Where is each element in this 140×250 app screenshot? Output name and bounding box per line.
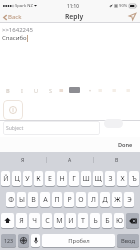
button[interactable]: mic bbox=[31, 234, 40, 247]
button[interactable]: П bbox=[52, 192, 62, 207]
staticText: >>1642245 bbox=[2, 26, 33, 34]
staticText: Г bbox=[72, 174, 76, 184]
button[interactable]: globe bbox=[18, 234, 29, 247]
staticText: 90% bbox=[119, 3, 128, 9]
button[interactable]: Toggle bbox=[104, 119, 123, 128]
button[interactable]: Я bbox=[16, 213, 27, 228]
button[interactable]: Subject bbox=[3, 121, 100, 135]
staticText: Р bbox=[67, 195, 72, 205]
staticText: Д bbox=[102, 195, 108, 205]
staticText: ≡ bbox=[112, 87, 117, 93]
button[interactable]: А bbox=[47, 152, 93, 168]
staticText: И bbox=[68, 216, 74, 226]
staticText: Й bbox=[3, 174, 9, 184]
button[interactable]: B bbox=[3, 85, 12, 95]
button[interactable]: Ы bbox=[17, 192, 26, 207]
staticText: Э bbox=[127, 195, 132, 205]
button[interactable]: Attachment bbox=[3, 100, 23, 120]
staticText: С bbox=[45, 216, 50, 226]
staticText: М bbox=[56, 216, 63, 226]
staticText: Ы bbox=[19, 195, 25, 205]
staticText: ≡ bbox=[98, 87, 103, 93]
button[interactable]: Ъ bbox=[129, 171, 139, 186]
button[interactable]: Ж bbox=[112, 192, 122, 207]
staticText: U bbox=[34, 87, 39, 94]
staticText: З bbox=[108, 174, 113, 184]
button[interactable]: • bbox=[86, 85, 95, 95]
button[interactable]: Ь bbox=[90, 213, 100, 228]
staticText: Х bbox=[120, 174, 125, 184]
staticText: Subject bbox=[6, 125, 24, 132]
staticText: П bbox=[54, 195, 60, 205]
button[interactable]: Пробел bbox=[42, 234, 115, 247]
button[interactable]: Ф bbox=[6, 192, 15, 207]
button[interactable]: Б bbox=[102, 213, 112, 228]
button[interactable]: back bbox=[126, 213, 139, 228]
staticText: А bbox=[68, 157, 72, 164]
button[interactable]: U bbox=[32, 85, 41, 95]
button[interactable]: Ю bbox=[114, 213, 124, 228]
button[interactable]: А bbox=[40, 192, 50, 207]
staticText: У bbox=[25, 174, 30, 184]
button[interactable]: Back bbox=[2, 12, 23, 22]
staticText: В bbox=[31, 195, 36, 205]
button[interactable]: Done bbox=[116, 139, 135, 151]
button[interactable]: 123 bbox=[1, 234, 16, 247]
button[interactable]: Т bbox=[78, 213, 88, 228]
staticText: Ф bbox=[8, 195, 14, 205]
staticText: Ь bbox=[93, 216, 98, 226]
staticText: ≡ bbox=[126, 87, 131, 93]
button[interactable]: З bbox=[105, 171, 115, 186]
button[interactable]: У bbox=[23, 171, 32, 186]
button[interactable]: Ш bbox=[81, 171, 91, 186]
staticText: Ч bbox=[32, 216, 37, 226]
button[interactable]: Ввод bbox=[117, 234, 139, 247]
button[interactable]: Й bbox=[1, 171, 10, 186]
button[interactable]: В bbox=[94, 152, 140, 168]
staticText: 123 bbox=[4, 237, 13, 244]
button[interactable]: В bbox=[28, 192, 38, 207]
button[interactable]: Е bbox=[45, 171, 55, 186]
button[interactable]: И bbox=[66, 213, 76, 228]
button[interactable]: Н bbox=[57, 171, 67, 186]
staticText: Ж bbox=[114, 195, 121, 205]
staticText: Пробел bbox=[68, 237, 90, 245]
staticText: Ю bbox=[116, 216, 123, 226]
staticText: Щ bbox=[94, 174, 102, 184]
staticText: А bbox=[43, 195, 48, 205]
staticText: Ъ bbox=[132, 174, 137, 184]
button[interactable]: I bbox=[17, 85, 26, 95]
button[interactable]: Щ bbox=[93, 171, 103, 186]
button[interactable]: ≡ bbox=[57, 85, 66, 95]
button[interactable]: Text style bbox=[69, 87, 80, 93]
staticText: S bbox=[49, 87, 53, 94]
button[interactable]: Ч bbox=[29, 213, 40, 228]
button[interactable]: Л bbox=[88, 192, 98, 207]
staticText: В bbox=[115, 157, 119, 164]
button[interactable]: ≡ bbox=[110, 85, 119, 95]
button[interactable]: К bbox=[34, 171, 43, 186]
staticText: Ввод bbox=[121, 237, 135, 245]
staticText: ≡ bbox=[59, 87, 64, 93]
staticText: Reply bbox=[65, 12, 84, 21]
button[interactable]: Ц bbox=[12, 171, 21, 186]
button[interactable]: Д bbox=[100, 192, 110, 207]
button[interactable]: Я bbox=[0, 152, 46, 168]
staticText: К bbox=[36, 174, 41, 184]
button[interactable]: S bbox=[46, 85, 55, 95]
button[interactable]: Send bbox=[126, 11, 138, 22]
button[interactable]: О bbox=[76, 192, 86, 207]
staticText: • bbox=[89, 87, 92, 94]
button[interactable]: ≡ bbox=[96, 85, 105, 95]
button[interactable]: ≡ bbox=[124, 85, 133, 95]
button[interactable]: Х bbox=[117, 171, 127, 186]
button[interactable]: shift bbox=[1, 213, 14, 228]
button[interactable]: С bbox=[42, 213, 52, 228]
staticText: Я bbox=[19, 216, 24, 226]
button[interactable]: Р bbox=[64, 192, 74, 207]
button[interactable]: М bbox=[54, 213, 64, 228]
staticText: Ш bbox=[82, 174, 90, 184]
staticText: Б bbox=[105, 216, 110, 226]
button[interactable]: Г bbox=[69, 171, 79, 186]
button[interactable]: Э bbox=[124, 192, 134, 207]
